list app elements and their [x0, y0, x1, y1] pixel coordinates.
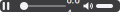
staticText: 0:04: [66, 0, 79, 15]
button[interactable]: Pause: [1, 0, 11, 12]
